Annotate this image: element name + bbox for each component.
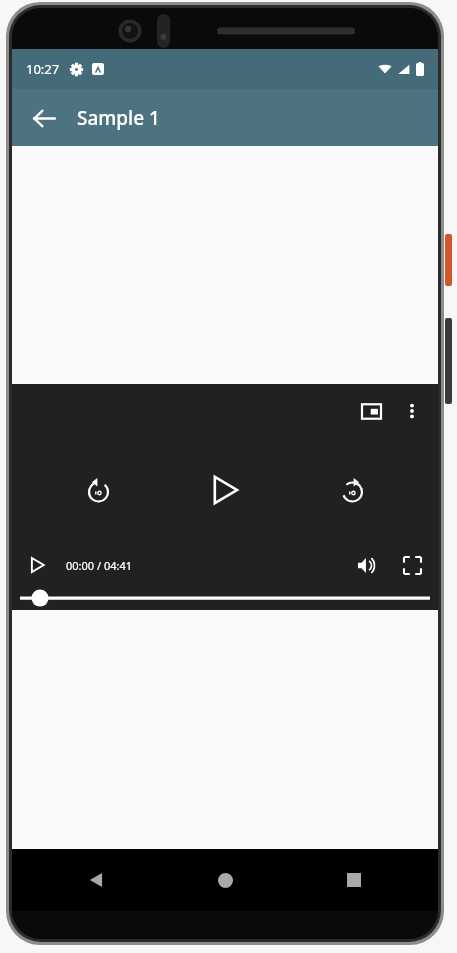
- staticText: 00:00 / 04:41: [66, 558, 133, 573]
- button[interactable]: Recent apps: [330, 856, 378, 904]
- button[interactable]: Back: [72, 856, 120, 904]
- staticText: 10:27: [26, 60, 60, 78]
- button[interactable]: More options: [392, 391, 432, 431]
- button[interactable]: Forward 10 seconds: [326, 464, 378, 516]
- button[interactable]: Picture in picture: [350, 390, 392, 432]
- button[interactable]: Replay 10 seconds: [72, 464, 124, 516]
- button[interactable]: Play: [196, 461, 254, 519]
- staticText: Sample 1: [77, 105, 160, 131]
- button[interactable]: Home: [201, 856, 249, 904]
- button[interactable]: Fullscreen: [392, 545, 432, 585]
- button[interactable]: Back: [20, 94, 68, 142]
- button[interactable]: Play: [18, 546, 56, 584]
- button[interactable]: Volume: [346, 545, 386, 585]
